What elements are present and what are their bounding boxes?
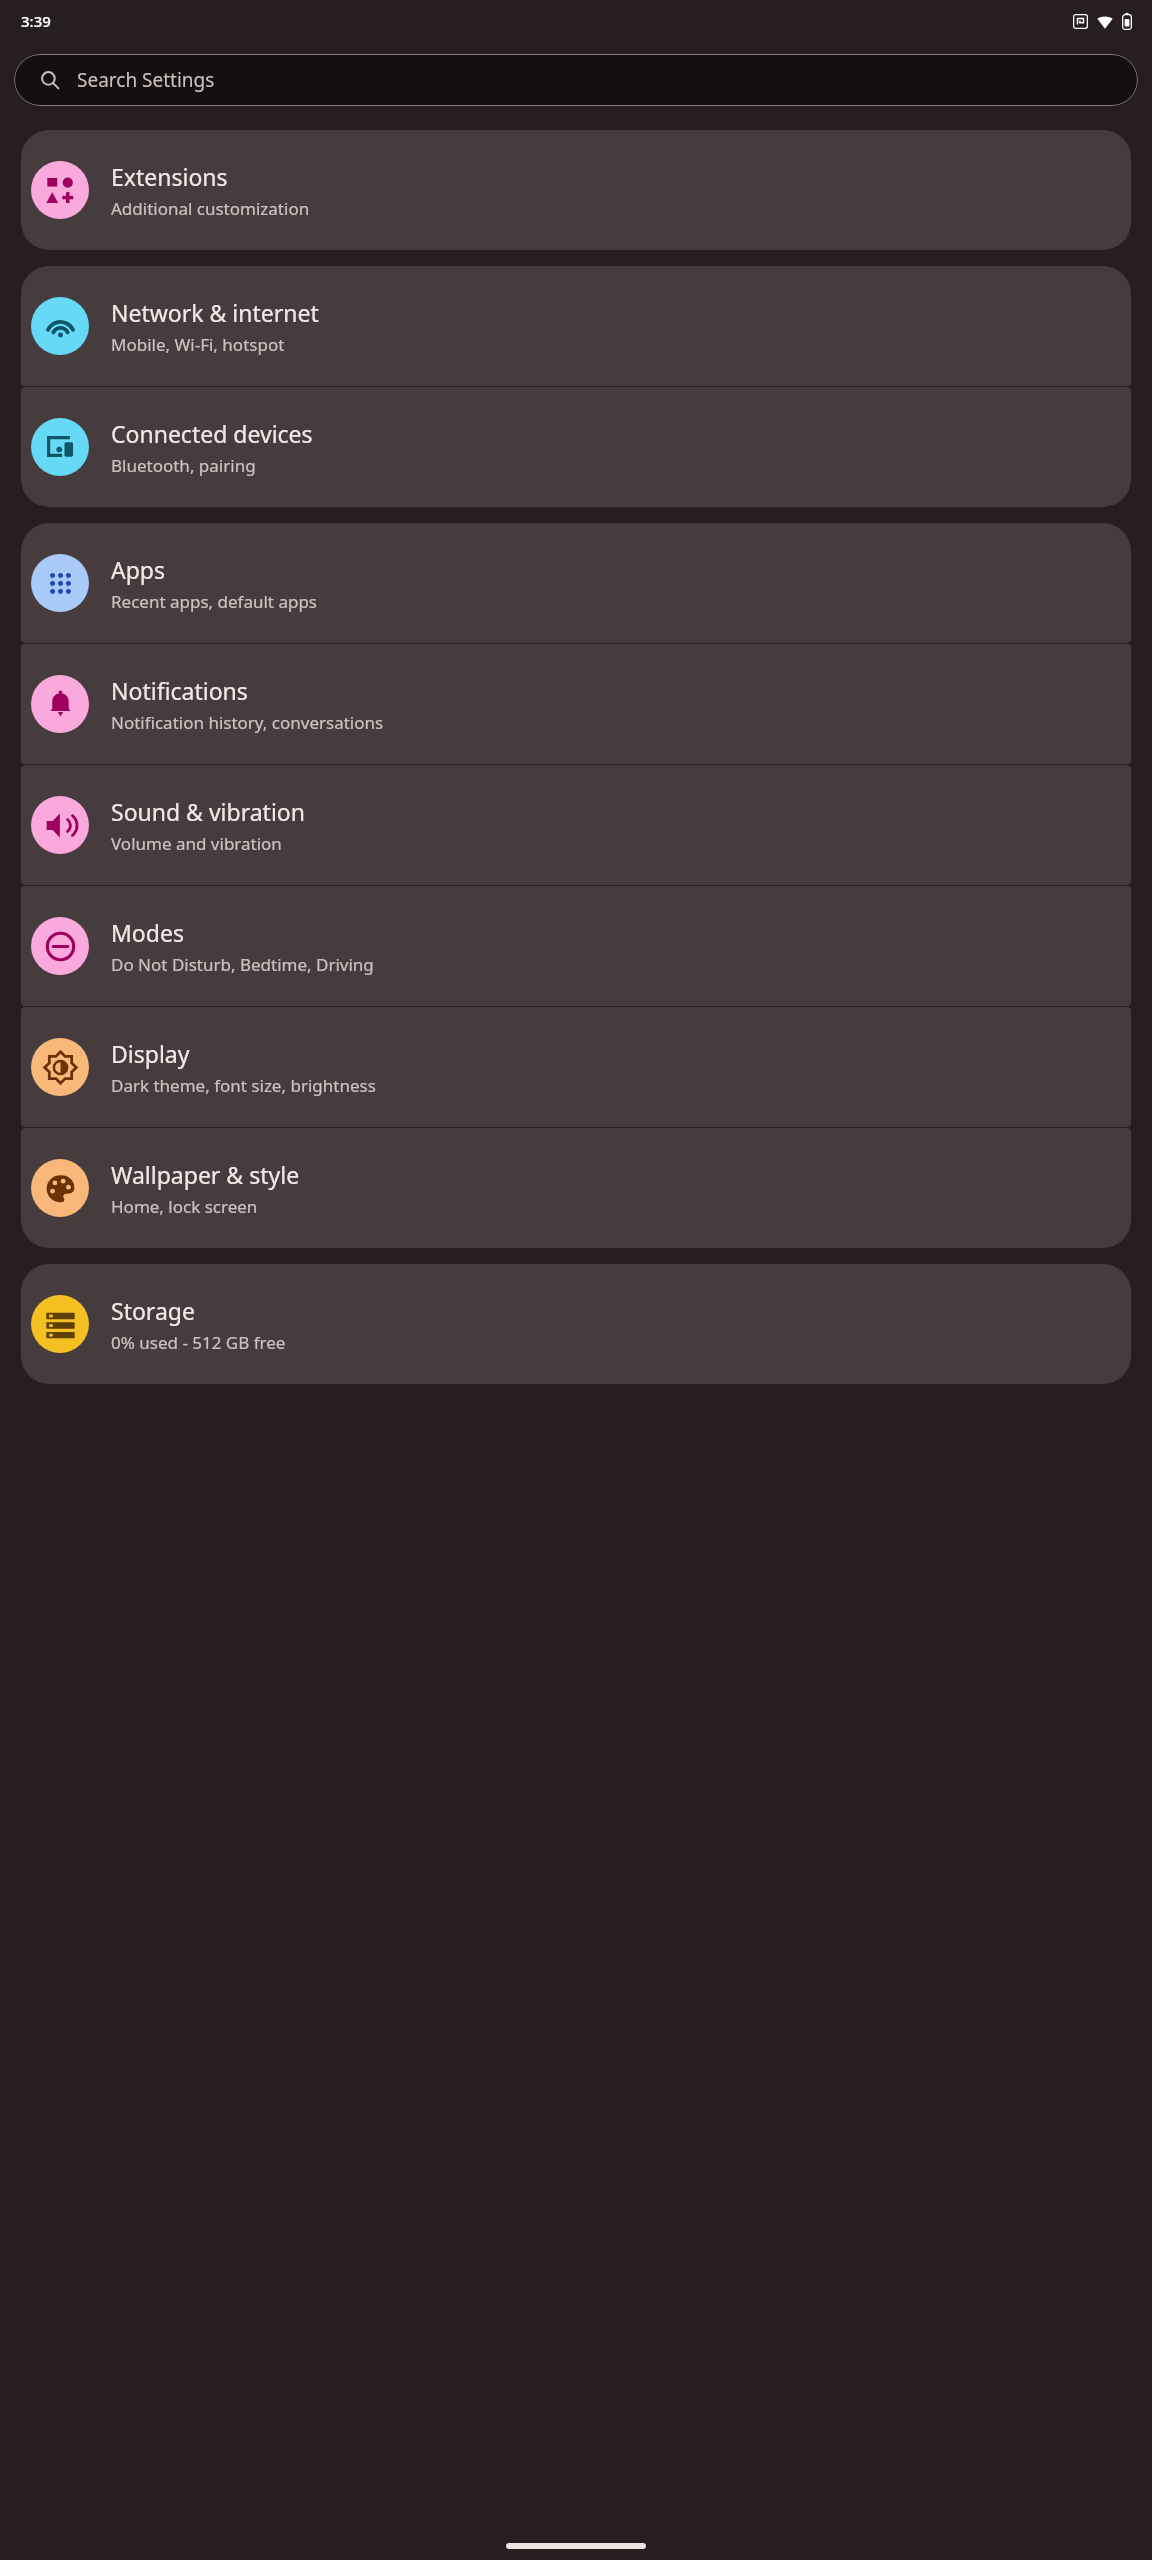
staticText: 0% used - 512 GB free xyxy=(111,1331,286,1354)
staticText: Recent apps, default apps xyxy=(111,590,318,613)
staticText: Do Not Disturb, Bedtime, Driving xyxy=(111,953,374,976)
button[interactable]: Connected devices xyxy=(21,387,1131,507)
staticText: Display xyxy=(111,1038,190,1069)
button[interactable]: Notifications xyxy=(21,644,1131,764)
button[interactable]: Display xyxy=(21,1007,1131,1127)
staticText: Bluetooth, pairing xyxy=(111,454,256,477)
staticText: Connected devices xyxy=(111,418,313,449)
button[interactable]: Network & internet xyxy=(21,266,1131,386)
staticText: Wallpaper & style xyxy=(111,1159,300,1190)
button[interactable]: Search Settings xyxy=(14,54,1138,106)
staticText: Search Settings xyxy=(77,67,215,93)
staticText: 3:39 xyxy=(21,11,51,31)
staticText: Additional customization xyxy=(111,197,310,220)
staticText: Modes xyxy=(111,917,184,948)
staticText: Sound & vibration xyxy=(111,796,305,827)
staticText: Extensions xyxy=(111,161,228,192)
button[interactable]: Sound & vibration xyxy=(21,765,1131,885)
staticText: Mobile, Wi-Fi, hotspot xyxy=(111,333,285,356)
staticText: Notification history, conversations xyxy=(111,711,384,734)
staticText: Dark theme, font size, brightness xyxy=(111,1074,376,1097)
staticText: Network & internet xyxy=(111,297,319,328)
button[interactable]: Storage xyxy=(21,1264,1131,1384)
staticText: Apps xyxy=(111,554,166,585)
staticText: Home, lock screen xyxy=(111,1195,258,1218)
button[interactable]: Wallpaper & style xyxy=(21,1128,1131,1248)
button[interactable]: Modes xyxy=(21,886,1131,1006)
button[interactable]: Apps xyxy=(21,523,1131,643)
staticText: Notifications xyxy=(111,675,248,706)
button[interactable]: Extensions xyxy=(21,130,1131,250)
staticText: Volume and vibration xyxy=(111,832,282,855)
staticText: Storage xyxy=(111,1295,195,1326)
